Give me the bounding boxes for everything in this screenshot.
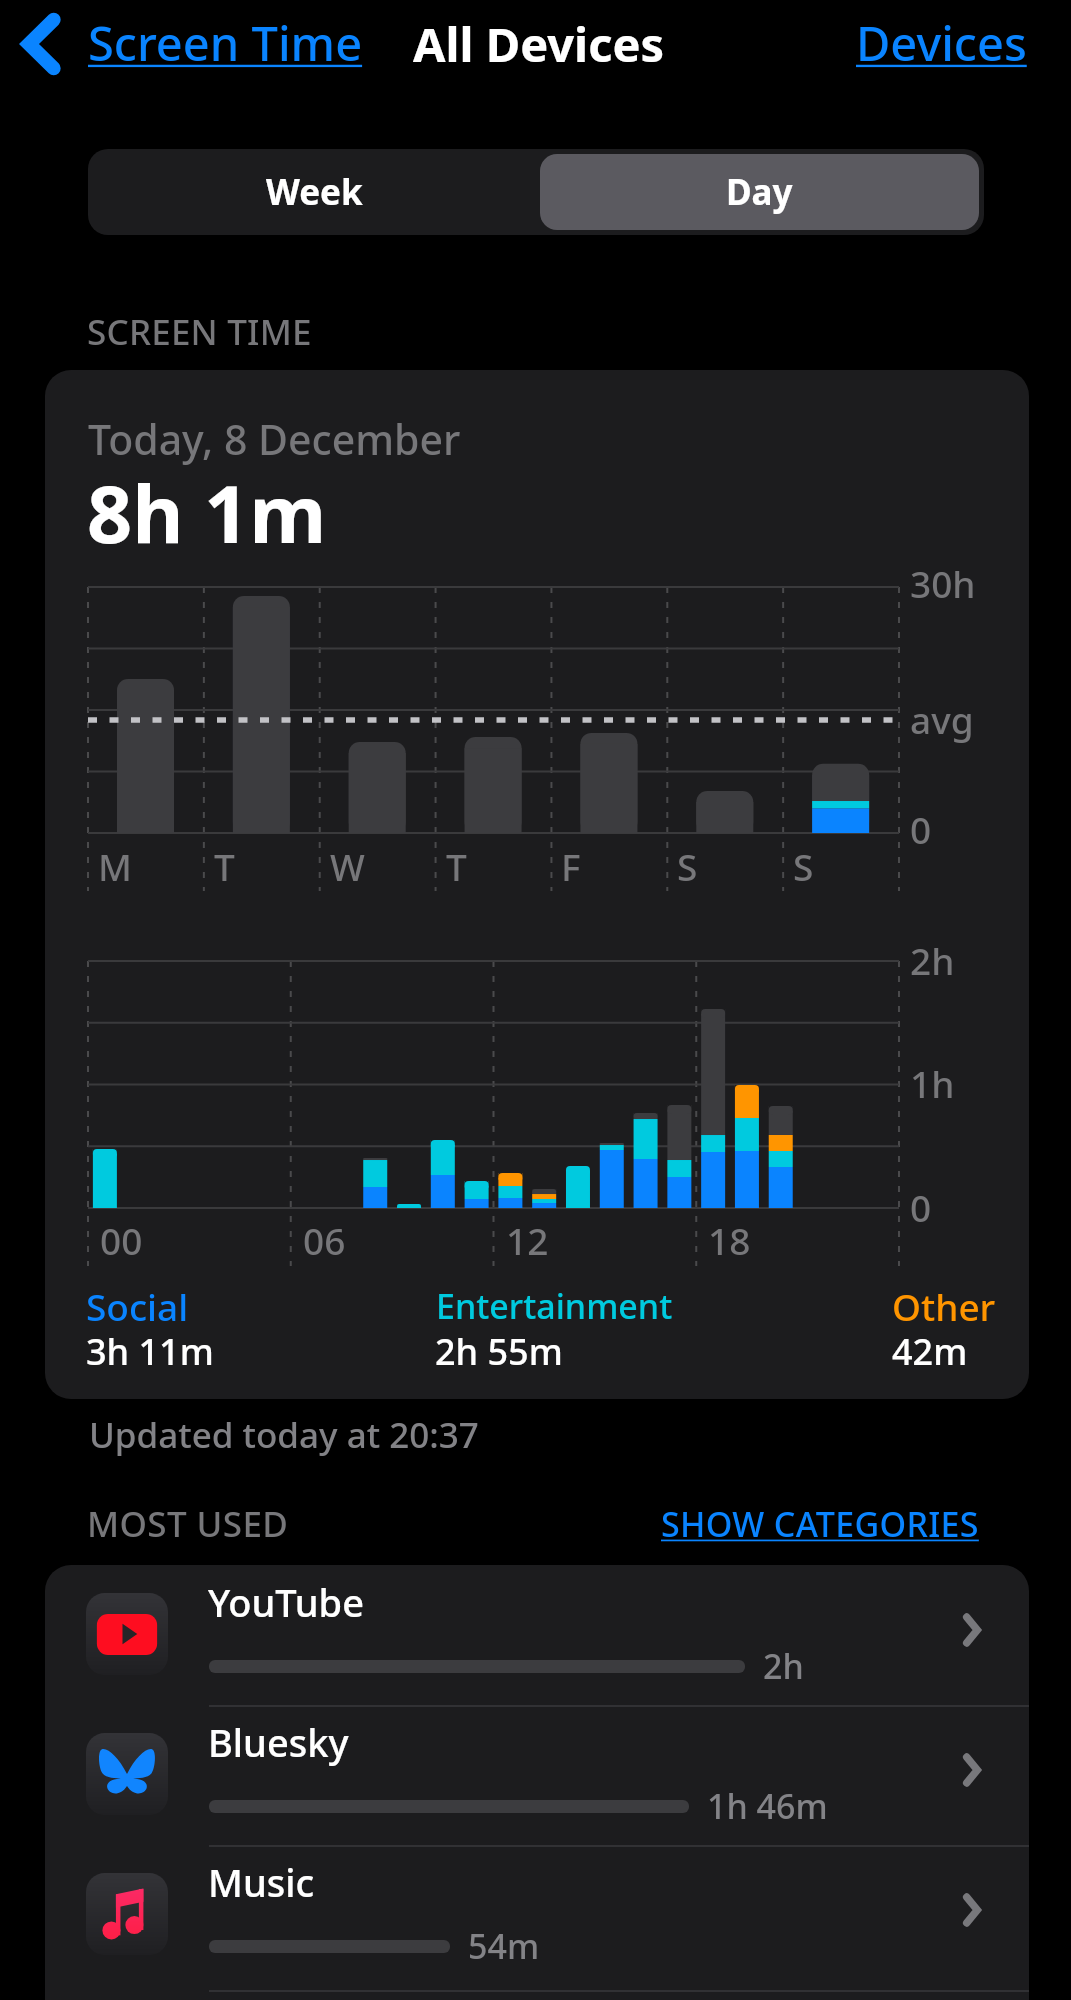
other: Open YouTube details — [961, 1613, 983, 1647]
staticText: Bluesky — [208, 1716, 349, 1768]
staticText: 2h — [910, 935, 955, 985]
staticText: Screen Time — [88, 11, 363, 75]
staticText: F — [561, 841, 581, 891]
staticText: 3h 11m — [86, 1327, 214, 1376]
staticText: Social — [86, 1281, 189, 1331]
staticText: 2h — [763, 1643, 804, 1689]
staticText: Day — [726, 168, 793, 216]
staticText: YouTube — [208, 1576, 364, 1628]
other: Open Music details — [961, 1893, 983, 1927]
staticText: SHOW CATEGORIES — [661, 1501, 979, 1547]
staticText: Music — [208, 1856, 315, 1908]
staticText: 0 — [910, 1182, 932, 1232]
staticText: T — [214, 841, 235, 891]
staticText: 54m — [468, 1923, 540, 1969]
button[interactable]: YouTube — [45, 1565, 1029, 1705]
staticText: Today, 8 December — [88, 411, 461, 467]
button[interactable]: Devices — [838, 0, 1043, 92]
button[interactable]: SHOW CATEGORIES — [640, 1485, 1000, 1547]
staticText: 00 — [100, 1215, 143, 1265]
staticText: 0 — [910, 804, 932, 854]
staticText: S — [793, 841, 814, 891]
staticText: Devices — [856, 11, 1027, 75]
button[interactable]: Day — [540, 154, 979, 230]
staticText: M — [98, 841, 132, 891]
staticText: S — [677, 841, 698, 891]
other: Open Bluesky details — [961, 1753, 983, 1787]
staticText: 06 — [303, 1215, 346, 1265]
staticText: 1h 46m — [707, 1783, 828, 1829]
staticText: Week — [266, 168, 363, 216]
staticText: Updated today at 20:37 — [89, 1411, 479, 1459]
staticText: 1h — [910, 1058, 955, 1108]
staticText: 42m — [892, 1327, 968, 1376]
staticText: Other — [892, 1281, 996, 1331]
button[interactable]: Back to Screen Time — [6, 0, 370, 92]
staticText: T — [446, 841, 467, 891]
button[interactable]: Week — [88, 149, 540, 235]
staticText: SCREEN TIME — [87, 308, 312, 356]
staticText: 2h 55m — [435, 1327, 563, 1376]
button[interactable]: Bluesky — [45, 1705, 1029, 1845]
staticText: 8h 1m — [87, 459, 327, 567]
button[interactable]: Music — [45, 1845, 1029, 1985]
staticText: W — [330, 841, 365, 891]
staticText: All Devices — [413, 12, 665, 76]
staticText: 30h — [910, 558, 976, 608]
staticText: avg — [910, 694, 974, 744]
staticText: 18 — [708, 1215, 751, 1265]
staticText: Entertainment — [436, 1283, 673, 1329]
staticText: 12 — [506, 1215, 549, 1265]
staticText: MOST USED — [87, 1500, 289, 1548]
